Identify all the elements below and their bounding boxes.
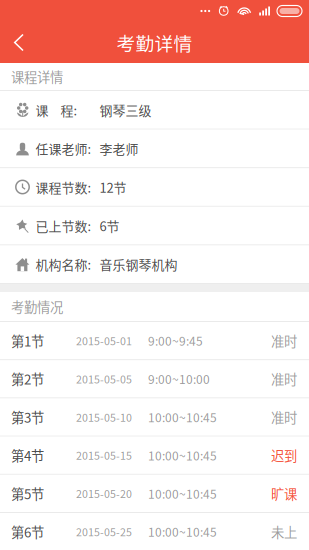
staticText: 12节 xyxy=(99,178,126,196)
staticText: 第3节 xyxy=(11,407,44,427)
staticText: 9:00~9:45 xyxy=(148,332,203,349)
staticText: 课 程: xyxy=(35,100,77,119)
staticText: 第5节 xyxy=(11,484,44,503)
staticText: 机构名称: xyxy=(35,255,91,273)
staticText: 2015-05-15 xyxy=(76,447,132,463)
staticText: 第1节 xyxy=(11,331,44,350)
staticText: 钢琴三级 xyxy=(99,100,151,119)
staticText: 课程详情 xyxy=(11,67,63,86)
staticText: 准时 xyxy=(271,331,297,350)
button[interactable]: Back xyxy=(0,22,38,63)
staticText: 第4节 xyxy=(11,445,44,465)
staticText: 音乐钢琴机构 xyxy=(99,255,177,273)
staticText: 10:00~10:45 xyxy=(148,485,217,502)
staticText: 准时 xyxy=(271,407,297,427)
staticText: 9:00~10:00 xyxy=(148,370,210,387)
staticText: 2015-05-10 xyxy=(76,409,132,425)
staticText: 考勤情况 xyxy=(11,297,63,316)
staticText: 考勤详情 xyxy=(116,29,192,56)
staticText: 10:00~10:45 xyxy=(148,446,217,464)
staticText: 2015-05-25 xyxy=(76,524,132,539)
staticText: 李老师 xyxy=(99,139,138,158)
staticText: 2015-05-20 xyxy=(76,486,132,501)
staticText: 10:00~10:45 xyxy=(148,523,217,540)
staticText: 2015-05-01 xyxy=(76,333,132,348)
staticText: 任课老师: xyxy=(35,139,91,158)
staticText: 第2节 xyxy=(11,369,44,388)
staticText: 课程节数: xyxy=(35,178,91,196)
staticText: 未上 xyxy=(271,522,297,541)
staticText: 第6节 xyxy=(11,522,44,541)
staticText: 迟到 xyxy=(271,445,297,465)
staticText: 旷课 xyxy=(271,484,297,503)
staticText: 2015-05-05 xyxy=(76,371,132,386)
staticText: 10:00~10:45 xyxy=(148,408,217,426)
staticText: 已上节数: xyxy=(35,216,91,235)
staticText: 6节 xyxy=(99,216,119,235)
staticText: 准时 xyxy=(271,369,297,388)
